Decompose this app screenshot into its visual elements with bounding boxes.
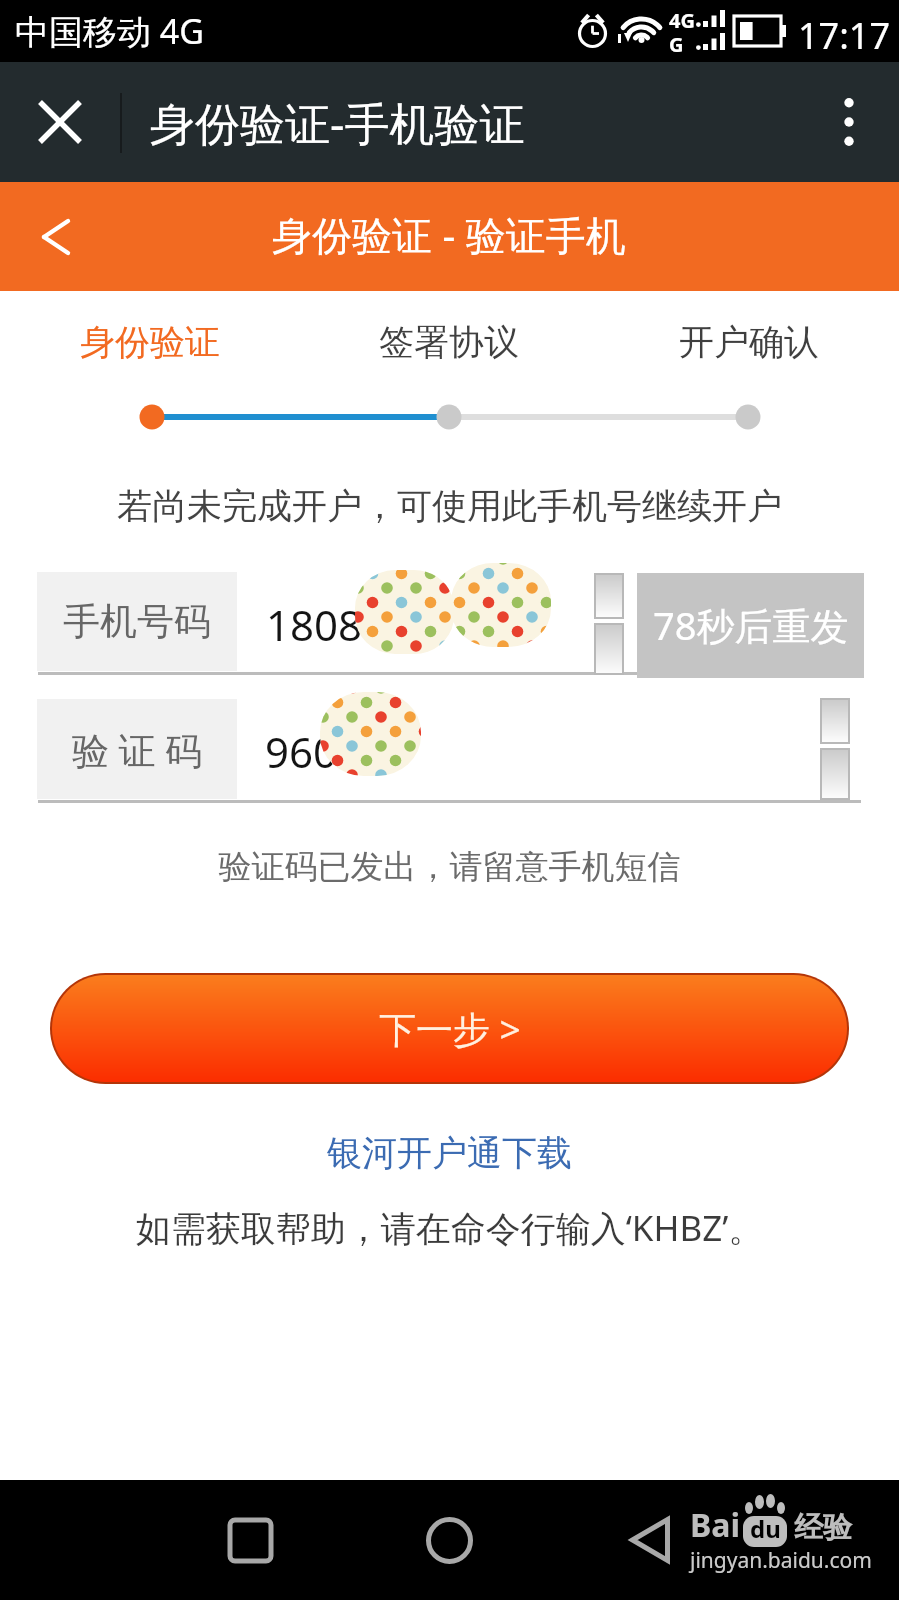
button[interactable]: 签署协议 (299, 311, 599, 373)
staticText: 身份验证 - 验证手机 (272, 207, 626, 262)
staticText: 4G (669, 7, 695, 34)
button[interactable]: Close (0, 62, 120, 182)
button[interactable]: Decrease (822, 750, 848, 798)
staticText: 验证码已发出，请留意手机短信 (0, 846, 899, 888)
staticText: 签署协议 (379, 320, 519, 364)
staticText: 银河开户通下载 (327, 1131, 572, 1175)
staticText: G (669, 31, 684, 52)
staticText: jingyan.baidu.com (690, 1546, 872, 1575)
staticText: 如需获取帮助，请在命令行输入‘KHBZ’。 (0, 1204, 899, 1252)
button[interactable]: 验 证 码 (37, 699, 237, 799)
staticText: Bai (690, 1503, 741, 1547)
staticText: 中国移动 4G (15, 8, 205, 54)
button[interactable]: Increase (822, 700, 848, 742)
staticText: 手机号码 (63, 598, 211, 645)
button[interactable]: Decrease (596, 625, 622, 673)
staticText: 身份验证 (80, 320, 220, 364)
staticText: 78秒后重发 (653, 599, 849, 651)
staticText: 开户确认 (679, 320, 819, 364)
button[interactable]: Back (0, 182, 112, 291)
button[interactable]: Recent apps (200, 1490, 300, 1590)
staticText: 960 (265, 723, 338, 780)
staticText: 18085 (266, 596, 387, 653)
button[interactable]: 银河开户通下载 (317, 1126, 582, 1180)
button[interactable]: 78秒后重发 (637, 573, 864, 678)
staticText: du (750, 1512, 781, 1545)
button[interactable]: Increase (596, 575, 622, 617)
button[interactable]: 身份验证 (0, 311, 299, 373)
button[interactable]: 手机号码 (37, 572, 237, 671)
staticText: 经验 (794, 1509, 852, 1546)
button[interactable]: Home (399, 1490, 499, 1590)
staticText: 验 证 码 (72, 724, 203, 775)
staticText: 若尚未完成开户，可使用此手机号继续开户 (0, 484, 899, 528)
button[interactable]: More options (799, 62, 899, 182)
staticText: 17:17 (798, 11, 891, 60)
staticText: 身份验证-手机验证 (150, 92, 525, 153)
button[interactable]: 开户确认 (599, 311, 899, 373)
button[interactable]: Back (600, 1490, 700, 1590)
staticText: 下一步 > (379, 1003, 521, 1054)
button[interactable]: 下一步 > (52, 975, 847, 1082)
